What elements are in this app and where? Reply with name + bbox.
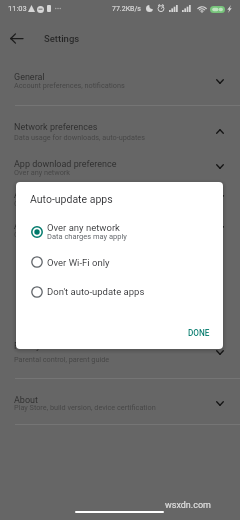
staticText: Data charges may apply: [47, 232, 127, 241]
staticText: Network preferences: [14, 122, 98, 133]
button[interactable]: [0, 388, 240, 430]
staticText: DONE: [188, 328, 210, 338]
staticText: Auto-play videos: [14, 221, 80, 232]
staticText: Data usage for downloads, auto-updates: [14, 133, 145, 142]
button[interactable]: [16, 219, 223, 245]
button[interactable]: DONE: [180, 323, 218, 343]
staticText: wsxdn.com: [165, 500, 211, 511]
button[interactable]: [0, 214, 240, 244]
staticText: About: [14, 395, 38, 406]
staticText: Over Wi-Fi only: [47, 257, 110, 268]
staticText: General: [14, 72, 45, 83]
staticText: Over any network: [14, 168, 71, 177]
staticText: Family: [14, 341, 41, 352]
button[interactable]: [16, 249, 223, 275]
staticText: Parental control, parent guide: [14, 355, 110, 364]
staticText: 11:03: [8, 4, 27, 13]
button[interactable]: Back: [5, 27, 27, 49]
button[interactable]: [16, 279, 223, 305]
button[interactable]: [0, 114, 240, 156]
staticText: Auto-update apps: [30, 193, 113, 205]
staticText: Don't auto-update apps: [47, 286, 145, 297]
staticText: Over any network: [47, 222, 120, 233]
button[interactable]: [0, 152, 240, 182]
button[interactable]: [0, 65, 240, 107]
staticText: On Wi-Fi only: [14, 230, 57, 239]
staticText: Account preferences, notifications: [14, 81, 125, 90]
staticText: Over any network: [14, 199, 71, 208]
staticText: 77.2KB/s: [112, 5, 141, 13]
button[interactable]: [0, 183, 240, 213]
staticText: Settings: [44, 33, 80, 44]
staticText: Play Store, build version, device certif…: [14, 403, 156, 412]
staticText: App download preference: [14, 159, 117, 170]
staticText: Auto-update apps: [14, 190, 85, 201]
button[interactable]: [0, 334, 240, 364]
